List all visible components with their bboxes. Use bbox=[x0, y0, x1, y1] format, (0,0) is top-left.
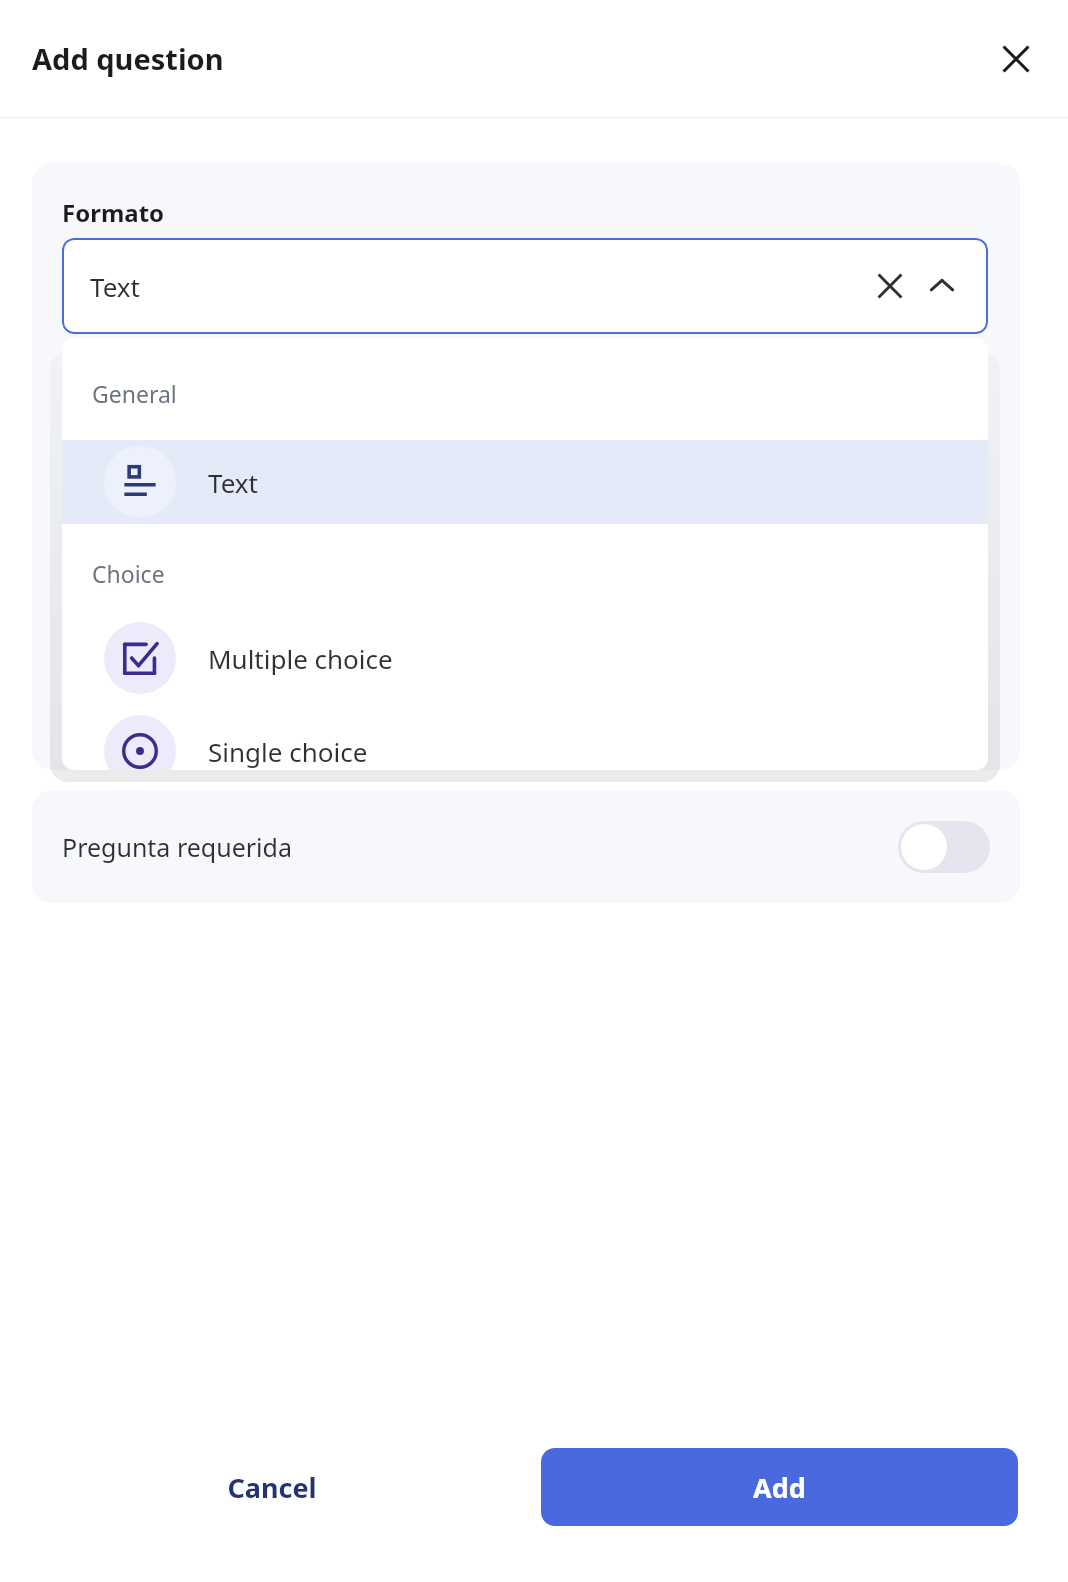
staticText: Multiple choice bbox=[208, 641, 393, 676]
staticText: Choice bbox=[92, 558, 165, 589]
staticText: Text bbox=[90, 269, 140, 304]
staticText: Text bbox=[208, 465, 258, 500]
button[interactable]: Multiple choice bbox=[62, 616, 988, 700]
button[interactable]: Pregunta requerida bbox=[32, 790, 1020, 903]
button[interactable]: Close bbox=[984, 27, 1048, 91]
button[interactable]: Text bbox=[62, 238, 988, 334]
button[interactable]: Pregunta requerida toggle bbox=[898, 821, 990, 873]
button[interactable]: Add bbox=[541, 1448, 1018, 1526]
staticText: Single choice bbox=[208, 734, 368, 769]
button[interactable]: Clear bbox=[866, 262, 914, 310]
staticText: Add question bbox=[32, 39, 224, 78]
staticText: Cancel bbox=[227, 1469, 317, 1506]
button[interactable]: Cancel bbox=[152, 1448, 392, 1526]
button[interactable]: Single choice bbox=[62, 709, 988, 770]
staticText: Formato bbox=[62, 196, 165, 229]
staticText: General bbox=[92, 378, 177, 409]
staticText: Pregunta requerida bbox=[62, 830, 292, 864]
button[interactable]: Text bbox=[62, 440, 988, 524]
button[interactable]: Collapse bbox=[918, 262, 966, 310]
staticText: Add bbox=[753, 1469, 806, 1506]
